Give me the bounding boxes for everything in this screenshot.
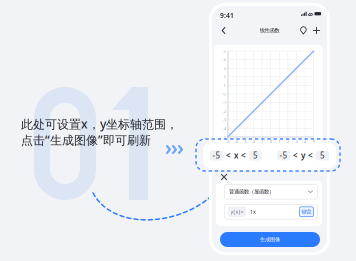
staticText: -1 bbox=[261, 139, 264, 144]
staticText: 此处可设置x，y坐标轴范围， bbox=[21, 116, 178, 132]
staticText: -5 bbox=[226, 139, 229, 144]
staticText: 3 bbox=[223, 65, 225, 71]
button[interactable]: 5 bbox=[249, 150, 262, 160]
button[interactable]: -5 bbox=[277, 150, 290, 160]
staticText: -4 bbox=[235, 139, 238, 144]
button[interactable]: 生成图像 bbox=[220, 232, 320, 247]
staticText: 4 bbox=[304, 139, 306, 144]
staticText: -2 bbox=[223, 108, 226, 114]
staticText: 2 bbox=[287, 139, 289, 144]
staticText: 生成图像 bbox=[260, 236, 280, 243]
staticText: < bbox=[241, 150, 246, 161]
staticText: < bbox=[293, 150, 298, 161]
staticText: y(x)= bbox=[230, 208, 243, 215]
staticText: 键盘 bbox=[301, 208, 311, 215]
button[interactable]: 5 bbox=[316, 150, 329, 160]
staticText: 点击“生成图像”即可刷新 bbox=[21, 132, 151, 148]
staticText: 0 bbox=[223, 91, 225, 97]
button[interactable]: 键盘 bbox=[299, 206, 314, 217]
button[interactable]: Back bbox=[218, 24, 229, 37]
staticText: 线性函数 bbox=[259, 27, 279, 34]
staticText: < bbox=[226, 150, 231, 161]
staticText: -4 bbox=[223, 126, 226, 131]
staticText: -5 bbox=[212, 150, 220, 161]
staticText: 4 bbox=[223, 57, 225, 62]
staticText: 1 bbox=[223, 83, 225, 88]
staticText: < bbox=[308, 150, 313, 161]
staticText: 5 bbox=[313, 139, 315, 144]
staticText: -5 bbox=[279, 150, 287, 161]
staticText: 5 bbox=[253, 150, 258, 161]
staticText: -3 bbox=[223, 117, 226, 122]
button[interactable]: 普通函数（显函数） bbox=[224, 184, 318, 199]
staticText: -1 bbox=[223, 100, 226, 105]
staticText: 2 bbox=[223, 74, 225, 79]
button[interactable]: Add bbox=[311, 24, 322, 37]
staticText: -2 bbox=[252, 139, 255, 144]
staticText: 9:41 bbox=[220, 11, 234, 20]
staticText: 普通函数（显函数） bbox=[229, 188, 274, 195]
staticText: 1 bbox=[278, 139, 280, 144]
staticText: 3 bbox=[295, 139, 297, 144]
staticText: 5 bbox=[320, 150, 325, 161]
staticText: -5 bbox=[223, 134, 226, 140]
staticText: -3 bbox=[243, 139, 246, 144]
staticText: y bbox=[301, 150, 305, 161]
staticText: 1x bbox=[250, 208, 256, 215]
staticText: 5 bbox=[223, 48, 225, 54]
button[interactable]: -5 bbox=[210, 150, 223, 160]
staticText: x bbox=[234, 150, 238, 161]
button[interactable]: Location bbox=[298, 24, 309, 37]
staticText: 0 bbox=[270, 139, 272, 144]
